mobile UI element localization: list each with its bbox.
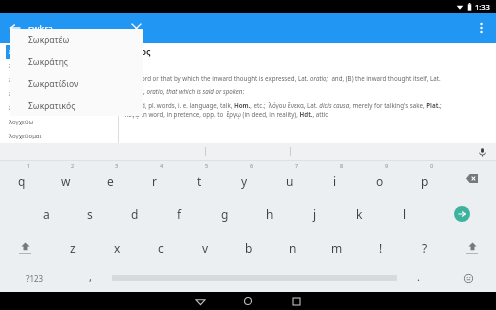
staticText: a word, pl. words, i. e. language, talk,…	[125, 101, 442, 119]
button[interactable]: !	[359, 231, 403, 264]
button[interactable]: s	[68, 196, 112, 231]
button[interactable]: h	[247, 196, 292, 231]
staticText: 7	[295, 162, 299, 169]
staticText: b	[245, 240, 253, 256]
staticText: p	[421, 173, 429, 189]
button[interactable]: f	[157, 196, 202, 231]
button[interactable]: Shift	[447, 231, 496, 264]
staticText: i	[333, 173, 337, 189]
button[interactable]: Shift	[0, 231, 50, 264]
button[interactable]: ,	[69, 264, 112, 292]
staticText: Σωκράτης	[28, 56, 68, 68]
staticText: m	[331, 240, 343, 256]
button[interactable]: λογογράφος	[6, 73, 118, 87]
staticText: 8	[340, 162, 344, 169]
button[interactable]: a	[24, 196, 68, 231]
button[interactable]: Σωκράτης	[10, 51, 143, 73]
button[interactable]: Voice input	[474, 144, 490, 160]
staticText: w	[61, 173, 71, 189]
button[interactable]: More options	[470, 17, 492, 39]
button[interactable]: 3	[88, 161, 132, 196]
staticText: λογιστής	[9, 62, 34, 70]
button[interactable]: d	[112, 196, 157, 231]
button[interactable]: v	[183, 231, 227, 264]
button[interactable]: 8	[312, 161, 357, 196]
staticText: Σωκρατέω	[28, 34, 70, 46]
button[interactable]: ?	[403, 231, 447, 264]
button[interactable]: Space	[112, 264, 397, 292]
staticText: 4	[160, 162, 164, 169]
staticText: 2	[71, 162, 75, 169]
button[interactable]: λογχεύομαι	[6, 129, 118, 143]
staticText: s	[87, 206, 93, 222]
button[interactable]: m	[315, 231, 359, 264]
staticText: the word or that by which the inward tho…	[125, 74, 443, 82]
staticText: y	[241, 173, 248, 189]
staticText: d	[131, 206, 139, 222]
button[interactable]: Σωκρατέω	[10, 29, 143, 51]
button[interactable]: ?123	[0, 264, 69, 292]
staticText: f	[177, 206, 182, 222]
staticText: 1:33	[475, 2, 490, 12]
staticText: !	[379, 240, 383, 256]
staticText: t	[197, 173, 202, 189]
button[interactable]: l	[382, 196, 427, 231]
button[interactable]: x	[95, 231, 139, 264]
staticText: 6	[250, 162, 254, 169]
button[interactable]: z	[50, 231, 95, 264]
staticText: l	[403, 206, 407, 222]
button[interactable]: 7	[267, 161, 312, 196]
button[interactable]: λογχεύω	[6, 115, 118, 129]
staticText: λογογράφος	[9, 76, 44, 84]
button[interactable]: j	[292, 196, 337, 231]
staticText: k	[356, 206, 363, 222]
staticText: v	[202, 240, 209, 256]
staticText: u	[286, 173, 294, 189]
staticText: λογχηρός	[9, 104, 37, 112]
button[interactable]: 4	[132, 161, 177, 196]
staticText: 0	[430, 162, 434, 169]
staticText: a	[43, 206, 50, 222]
button[interactable]: n	[271, 231, 315, 264]
button[interactable]: λόγος	[6, 87, 118, 101]
button[interactable]: 0	[402, 161, 447, 196]
button[interactable]: λογισμός	[6, 45, 118, 59]
staticText: 3	[115, 162, 119, 169]
button[interactable]: .	[397, 264, 440, 292]
button[interactable]: Σωκρατίδιον	[10, 73, 143, 95]
button[interactable]: λογιστής	[6, 59, 118, 73]
button[interactable]: Back	[183, 292, 217, 310]
button[interactable]: c	[139, 231, 183, 264]
button[interactable]: g	[202, 196, 247, 231]
button[interactable]: Recent apps	[279, 292, 313, 310]
button[interactable]: 2	[44, 161, 88, 196]
staticText: j	[313, 206, 317, 222]
button[interactable]: Enter	[427, 196, 496, 231]
staticText: Σωκρατικός	[28, 100, 76, 112]
staticText: λόγος	[125, 45, 151, 57]
button[interactable]: k	[337, 196, 382, 231]
staticText: ,	[89, 269, 92, 284]
button[interactable]: Σωκρατικός	[10, 95, 143, 116]
button[interactable]: Backspace	[447, 161, 496, 196]
staticText: 5	[205, 162, 209, 169]
staticText: o	[376, 173, 384, 189]
button[interactable]: swkra	[28, 15, 133, 41]
staticText: n	[289, 240, 297, 256]
button[interactable]: λογχηρός	[6, 101, 118, 115]
button[interactable]: 6	[222, 161, 267, 196]
button[interactable]: Emoji	[440, 264, 496, 292]
staticText: .	[417, 269, 420, 284]
staticText: c	[158, 240, 164, 256]
staticText: ?123	[26, 273, 44, 284]
button[interactable]: 9	[357, 161, 402, 196]
button[interactable]: Home	[231, 292, 265, 310]
button[interactable]: b	[227, 231, 271, 264]
staticText: λογχεύομαι	[9, 132, 42, 140]
staticText: e	[107, 173, 114, 189]
button[interactable]: Back	[4, 17, 26, 39]
button[interactable]: Clear	[125, 17, 147, 39]
button[interactable]: 1	[0, 161, 44, 196]
button[interactable]: 5	[177, 161, 222, 196]
